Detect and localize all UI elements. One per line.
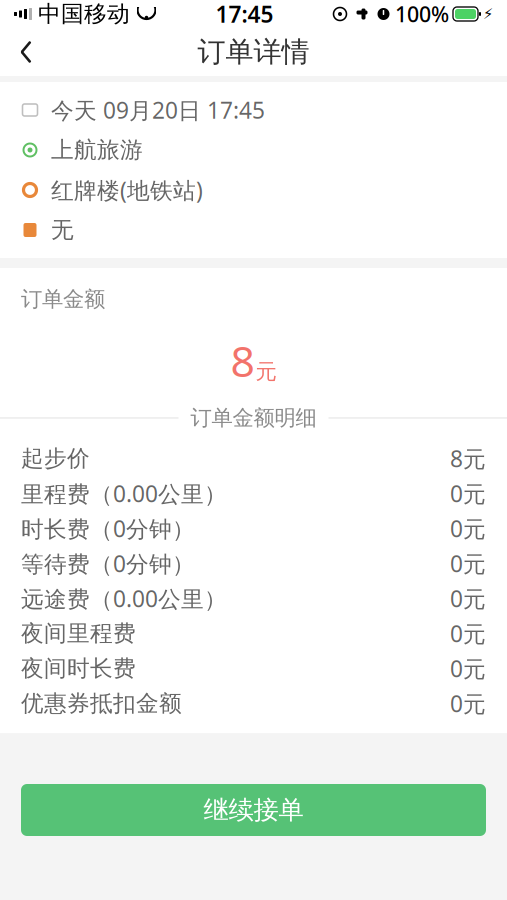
button[interactable]: 继续接单 [21,784,486,836]
staticText: 夜间里程费 [21,620,136,647]
staticText: 远途费（0.00公里） [21,583,227,614]
staticText: 0元 [450,478,486,509]
staticText: 起步价 [21,445,90,472]
staticText: 0元 [450,513,486,544]
staticText: 0元 [450,583,486,614]
staticText: 上航旅游 [51,136,143,164]
staticText: 继续接单 [203,794,303,825]
staticText: 中国移动 [38,0,130,28]
staticText: 红牌楼(地铁站) [51,175,203,205]
staticText: ⚡︎ [483,6,493,22]
staticText: 0元 [450,653,486,684]
staticText: 无 [51,216,74,244]
staticText: 0元 [450,548,486,579]
staticText: 里程费（0.00公里） [21,478,227,509]
staticText: 订单详情 [197,35,309,69]
staticText: 元 [255,359,276,385]
staticText: 今天 09月20日 17:45 [51,95,265,125]
staticText: 等待费（0分钟） [21,548,195,579]
staticText: 0元 [450,688,486,719]
staticText: 8 [230,332,254,389]
staticText: 100% [395,0,449,28]
staticText: 时长费（0分钟） [21,513,195,544]
staticText: 夜间时长费 [21,655,136,682]
staticText: 8元 [450,443,486,474]
button[interactable]: 返回 [0,28,52,76]
staticText: 订单金额明细 [190,405,316,431]
staticText: 17:45 [215,0,273,29]
staticText: 0元 [450,618,486,649]
staticText: 订单金额 [21,286,105,312]
staticText: 优惠券抵扣金额 [21,690,182,717]
